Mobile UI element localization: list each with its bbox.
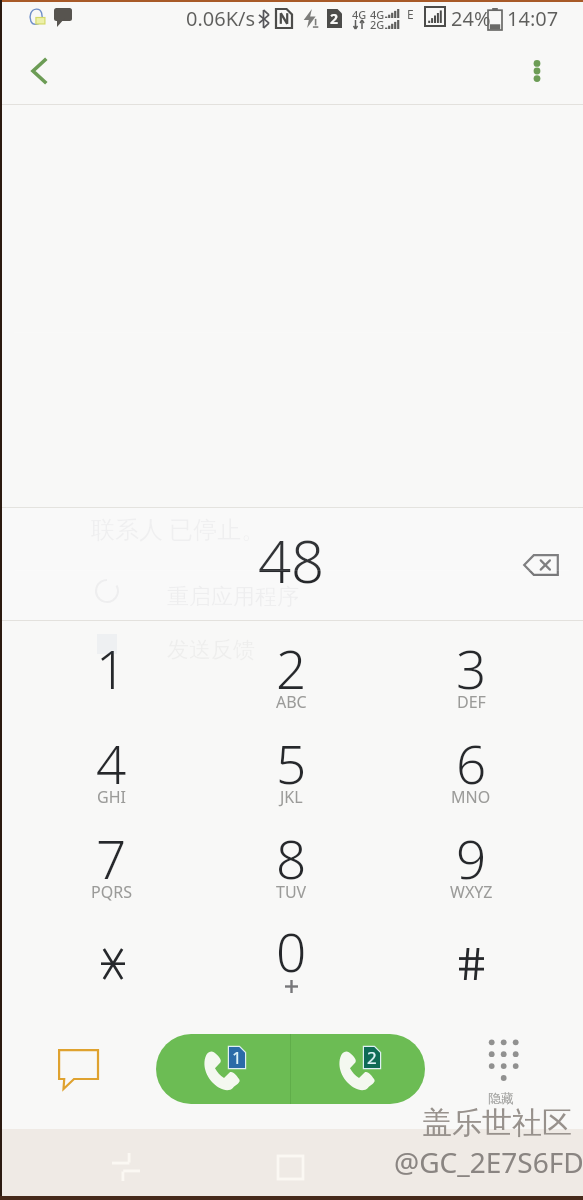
staticText: TUV <box>276 881 307 903</box>
button[interactable]: 5 <box>201 716 381 811</box>
staticText: PQRS <box>91 881 132 903</box>
staticText: MNO <box>451 786 491 808</box>
staticText: 48 <box>258 521 325 600</box>
button[interactable]: Backspace <box>511 535 571 595</box>
staticText: WXYZ <box>450 881 493 903</box>
button[interactable]: Recent apps <box>102 1143 150 1191</box>
staticText: 14:07 <box>507 5 559 32</box>
staticText: 4 <box>96 727 127 799</box>
staticText: 盖乐世社区 <box>422 1104 572 1142</box>
staticText: 3 <box>456 632 487 704</box>
staticText: 9 <box>456 822 487 894</box>
staticText: 8 <box>276 822 307 894</box>
button[interactable]: Back <box>12 44 66 98</box>
button[interactable] <box>22 906 201 1001</box>
button[interactable]: Home <box>266 1143 314 1191</box>
staticText: 2 <box>367 1046 377 1067</box>
staticText: 5 <box>276 727 307 799</box>
button[interactable]: 3 <box>381 621 561 716</box>
staticText: 0 <box>276 915 307 987</box>
staticText: 2 <box>330 9 339 28</box>
staticText: 发送反馈 <box>167 636 255 664</box>
staticText: JKL <box>280 786 303 808</box>
staticText: 7 <box>96 822 127 894</box>
staticText: 2 <box>276 632 307 704</box>
staticText: 4G <box>370 7 385 22</box>
button[interactable] <box>381 906 561 1001</box>
staticText: 4G <box>352 7 367 22</box>
staticText: GHI <box>97 786 126 808</box>
button[interactable]: Call with SIM 1 <box>156 1034 290 1104</box>
staticText: 2G <box>370 17 385 32</box>
button[interactable]: Call with SIM 2 <box>291 1034 425 1104</box>
button[interactable]: 1 <box>22 621 201 716</box>
staticText: @GC_2E7S6FD <box>394 1143 583 1181</box>
button[interactable]: 2 <box>201 621 381 716</box>
button[interactable]: 9 <box>381 811 561 906</box>
staticText: DEF <box>457 691 486 713</box>
staticText: 1 <box>96 632 127 704</box>
button[interactable]: 7 <box>22 811 201 906</box>
button[interactable]: Hide keypad <box>472 1029 536 1111</box>
button[interactable]: 0 <box>201 906 381 1001</box>
button[interactable]: Send message <box>47 1040 111 1096</box>
staticText: 1 <box>232 1046 242 1067</box>
staticText: 24% <box>451 5 491 32</box>
staticText: E <box>407 6 414 22</box>
staticText: ABC <box>276 691 307 713</box>
button[interactable]: 6 <box>381 716 561 811</box>
staticText: 0.06K/s <box>186 5 256 32</box>
staticText: 重启应用程序 <box>167 583 299 611</box>
button[interactable]: 4 <box>22 716 201 811</box>
button[interactable]: More options <box>513 47 561 95</box>
staticText: 6 <box>456 727 487 799</box>
button[interactable]: 8 <box>201 811 381 906</box>
staticText: 隐藏 <box>488 1090 514 1106</box>
